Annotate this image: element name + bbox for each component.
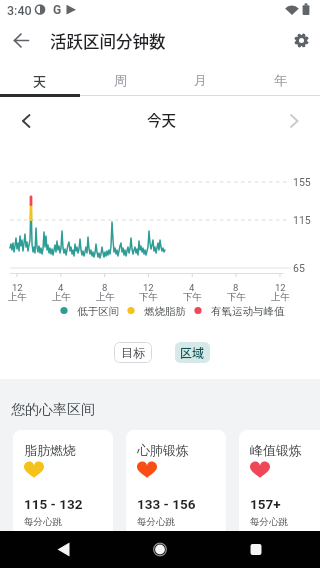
button[interactable]	[236, 535, 276, 565]
button[interactable]: 心肺锻炼	[126, 430, 226, 531]
staticText: 133 - 156	[137, 496, 196, 512]
staticText: 每分心跳	[250, 516, 288, 528]
staticText: 脂肪燃烧	[24, 442, 76, 458]
staticText: 有氧运动与峰值	[211, 305, 285, 318]
staticText: 目标	[121, 345, 145, 360]
staticText: 每分心跳	[24, 516, 62, 528]
staticText: 心肺锻炼	[137, 442, 189, 458]
staticText: 燃烧脂肪	[144, 305, 186, 318]
button[interactable]	[280, 107, 308, 135]
staticText: 上午	[8, 291, 27, 303]
staticText: 活跃区间分钟数	[50, 29, 166, 53]
staticText: 4	[58, 282, 64, 293]
staticText: 157+	[250, 496, 281, 512]
staticText: 低于区间	[77, 305, 119, 318]
staticText: 115 - 132	[24, 496, 83, 512]
button[interactable]: 脂肪燃烧	[13, 430, 113, 531]
staticText: 12	[12, 282, 23, 293]
staticText: 天	[33, 71, 47, 90]
button[interactable]: 区域	[175, 342, 210, 363]
staticText: 下午	[227, 291, 246, 303]
button[interactable]: 峰值锻炼	[239, 430, 320, 531]
button[interactable]	[140, 535, 180, 565]
button[interactable]	[44, 535, 84, 565]
staticText: 上午	[96, 291, 115, 303]
staticText: 周	[114, 72, 127, 88]
staticText: 8	[102, 282, 108, 293]
staticText: G	[53, 3, 62, 17]
button[interactable]: 目标	[114, 342, 152, 363]
staticText: 年	[274, 72, 287, 88]
staticText: 月	[194, 72, 207, 88]
staticText: 8	[233, 282, 239, 293]
staticText: 峰值锻炼	[250, 442, 302, 458]
staticText: 65	[293, 262, 305, 274]
staticText: 今天	[147, 109, 176, 130]
staticText: 12	[143, 282, 154, 293]
button[interactable]: 年	[240, 64, 320, 96]
staticText: 155	[293, 176, 311, 188]
button[interactable]: 天	[0, 64, 80, 96]
staticText: 12	[275, 282, 286, 293]
staticText: 3:40	[7, 3, 32, 18]
staticText: 下午	[139, 291, 158, 303]
staticText: 4	[189, 282, 195, 293]
staticText: 115	[293, 214, 311, 226]
button[interactable]	[12, 107, 40, 135]
button[interactable]: 今天	[134, 107, 189, 131]
staticText: 下午	[183, 291, 202, 303]
button[interactable]	[290, 29, 314, 53]
button[interactable]	[8, 27, 36, 55]
staticText: 区域	[180, 344, 205, 361]
staticText: 每分心跳	[137, 516, 175, 528]
staticText: 您的心率区间	[11, 401, 95, 419]
staticText: 上午	[271, 291, 290, 303]
button[interactable]: 周	[80, 64, 160, 96]
button[interactable]: 月	[160, 64, 240, 96]
staticText: 上午	[52, 291, 71, 303]
